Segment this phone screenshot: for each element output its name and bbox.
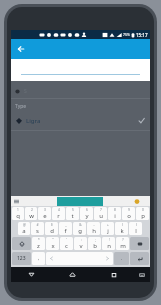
staticText: n <box>107 242 111 250</box>
button[interactable]: 123 <box>12 252 31 265</box>
staticText: j <box>107 227 109 235</box>
staticText: t <box>71 212 74 220</box>
staticText: : <box>81 238 82 242</box>
staticText: ? <box>122 238 124 242</box>
staticText: p <box>141 212 145 220</box>
staticText: 15:17 <box>136 32 148 38</box>
staticText: # <box>36 223 39 227</box>
staticText: i <box>114 212 116 220</box>
staticText: ' <box>66 238 67 242</box>
button[interactable]: Period <box>114 252 129 265</box>
staticText: y <box>85 212 89 220</box>
button[interactable]: @ <box>18 222 30 235</box>
staticText: 4 <box>58 208 60 212</box>
staticText: b <box>93 242 97 250</box>
button[interactable]: 3 <box>38 207 51 220</box>
staticText: ) <box>136 223 137 227</box>
staticText: " <box>52 238 54 242</box>
button[interactable]: ) <box>129 222 142 235</box>
staticText: . <box>121 255 123 262</box>
staticText: 8 <box>114 208 116 212</box>
button[interactable]: ! <box>102 237 115 250</box>
button[interactable]: 7 <box>94 207 107 220</box>
button[interactable]: 8 <box>108 207 121 220</box>
staticText: , <box>38 255 40 262</box>
staticText: Ligra <box>26 117 41 125</box>
staticText: o <box>127 212 131 220</box>
button[interactable]: Home <box>52 267 93 282</box>
staticText: @ <box>23 223 26 227</box>
staticText: q <box>16 212 20 220</box>
staticText: z <box>37 242 40 250</box>
staticText: - <box>93 223 95 227</box>
button[interactable]: " <box>46 237 59 250</box>
staticText: 75% <box>123 32 130 37</box>
button[interactable]: Backspace <box>130 237 149 250</box>
button[interactable]: Enter <box>130 252 149 265</box>
button[interactable]: 9 <box>122 207 135 220</box>
staticText: c <box>65 242 68 250</box>
staticText: 7 <box>100 208 102 212</box>
staticText: ! <box>109 238 110 242</box>
staticText: 3 <box>44 208 46 212</box>
button[interactable]: Shift <box>12 237 31 250</box>
staticText: l <box>135 227 137 235</box>
staticText: g <box>78 227 82 235</box>
staticText: m <box>120 242 126 250</box>
button[interactable]: ' <box>60 237 73 250</box>
staticText: u <box>99 212 103 220</box>
staticText: f <box>64 227 67 235</box>
button[interactable]: 2 <box>25 207 37 220</box>
button[interactable]: _ <box>59 222 72 235</box>
staticText: s <box>36 227 39 235</box>
staticText: v <box>79 242 83 250</box>
staticText: & <box>79 223 82 227</box>
button[interactable]: Hide keyboard <box>134 267 150 282</box>
button[interactable]: ? <box>116 237 129 250</box>
button[interactable]: $ <box>45 222 58 235</box>
staticText: a <box>22 227 26 235</box>
button[interactable]: 0 <box>136 207 149 220</box>
button[interactable]: Back <box>14 42 28 56</box>
button[interactable]: + <box>101 222 114 235</box>
staticText: e <box>43 212 47 220</box>
button[interactable]: * <box>32 237 45 250</box>
button[interactable]: 6 <box>80 207 93 220</box>
button[interactable]: , <box>32 252 45 265</box>
staticText: 2 <box>31 208 33 212</box>
staticText: h <box>92 227 96 235</box>
staticText: w <box>29 212 34 220</box>
staticText: k <box>120 227 124 235</box>
staticText: * <box>38 238 40 242</box>
staticText: 5 <box>72 208 74 212</box>
button[interactable]: & <box>73 222 86 235</box>
button[interactable]: Icon <box>11 84 150 98</box>
button[interactable]: 4 <box>52 207 65 220</box>
button[interactable] <box>11 59 150 81</box>
other: Icon <box>15 89 20 94</box>
button[interactable]: Ligra <box>11 114 150 127</box>
button[interactable]: # <box>31 222 44 235</box>
staticText: S <box>24 88 27 95</box>
button[interactable]: 1 <box>12 207 24 220</box>
staticText: r <box>57 212 60 220</box>
staticText: 123 <box>17 255 26 262</box>
staticText: x <box>51 242 55 250</box>
button[interactable]: Menu <box>13 198 19 204</box>
button[interactable]: ; <box>88 237 101 250</box>
button[interactable]: Recents <box>93 267 134 282</box>
staticText: ( <box>122 223 123 227</box>
staticText: d <box>50 227 54 235</box>
button[interactable]: 5 <box>66 207 79 220</box>
button[interactable]: ( <box>115 222 128 235</box>
button[interactable]: : <box>74 237 87 250</box>
staticText: 0 <box>142 208 144 212</box>
staticText: 1 <box>17 208 19 212</box>
other: Emoji <box>134 198 140 204</box>
button[interactable]: - <box>87 222 100 235</box>
button[interactable]: Back <box>11 267 52 282</box>
button[interactable]: Space <box>46 252 113 265</box>
staticText: ; <box>95 238 96 242</box>
staticText: 6 <box>86 208 88 212</box>
